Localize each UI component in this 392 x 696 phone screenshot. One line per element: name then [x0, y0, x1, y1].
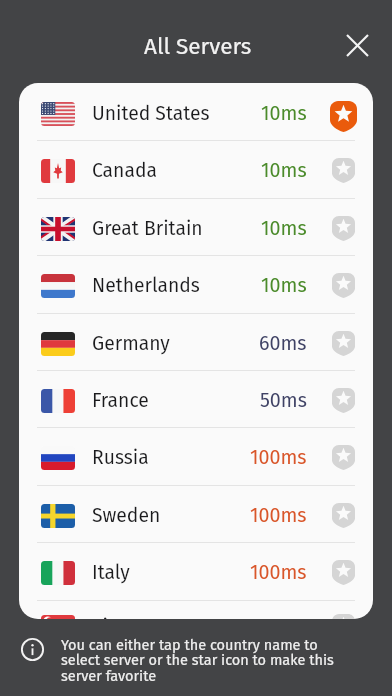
staticText: United States [92, 102, 210, 125]
staticText: Germany [92, 332, 170, 355]
button[interactable]: Netherlands [19, 255, 373, 312]
staticText: 10ms [261, 102, 307, 126]
staticText: Singapore [92, 615, 180, 619]
button[interactable]: Singapore [19, 596, 373, 619]
button[interactable]: United States [19, 83, 373, 140]
staticText: 100ms [250, 561, 307, 585]
staticText: France [92, 389, 149, 412]
button[interactable]: Mark favorite [321, 378, 365, 422]
button[interactable]: Mark favorite [321, 604, 365, 619]
button[interactable]: Mark favorite [321, 435, 365, 479]
staticText: 10ms [261, 159, 307, 183]
staticText: 10ms [261, 217, 307, 241]
staticText: All Servers [144, 33, 252, 60]
button[interactable]: Mark favorite [321, 148, 365, 192]
staticText: Canada [92, 159, 157, 182]
button[interactable]: Italy [19, 542, 373, 599]
button[interactable]: Mark favorite [321, 263, 365, 307]
staticText: 100ms [250, 504, 307, 528]
button[interactable]: Germany [19, 313, 373, 370]
staticText: Netherlands [92, 274, 200, 297]
staticText: 50ms [260, 389, 307, 413]
staticText: Russia [92, 446, 149, 469]
staticText: 100ms [250, 446, 307, 470]
staticText: 10ms [261, 274, 307, 298]
staticText: Italy [92, 561, 130, 584]
button[interactable]: Mark favorite [321, 493, 365, 537]
button[interactable]: Great Britain [19, 198, 373, 255]
staticText: Sweden [92, 504, 161, 527]
other: Information [17, 634, 48, 665]
button[interactable]: France [19, 370, 373, 427]
button[interactable]: Russia [19, 427, 373, 484]
staticText: 60ms [259, 332, 307, 356]
staticText: You can either tap the country name to s… [61, 636, 349, 685]
button[interactable]: Sweden [19, 485, 373, 542]
button[interactable]: Mark favorite [321, 206, 365, 250]
button[interactable]: Mark favorite [321, 550, 365, 594]
staticText: Great Britain [92, 217, 203, 240]
button[interactable]: Mark favorite [321, 94, 365, 138]
button[interactable]: Canada [19, 140, 373, 197]
button[interactable]: Mark favorite [321, 321, 365, 365]
button[interactable]: Close [335, 23, 379, 67]
